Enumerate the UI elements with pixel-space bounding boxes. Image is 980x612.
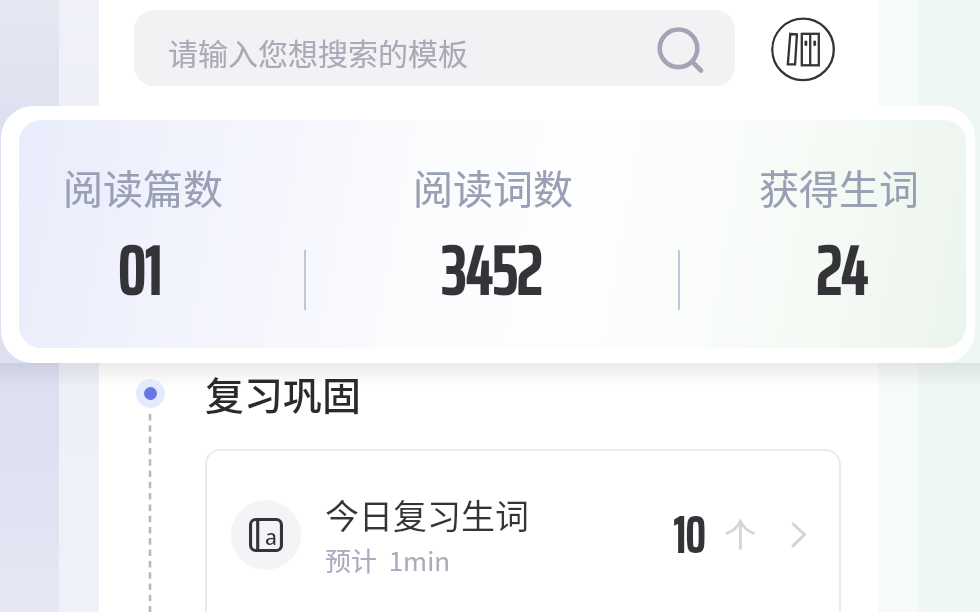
button[interactable]: a <box>205 449 841 612</box>
staticText: 今日复习生词 <box>325 490 529 539</box>
staticText: 01 <box>0 218 289 325</box>
button[interactable]: 请输入您想搜索的模板 <box>134 10 735 86</box>
staticText: 请输入您想搜索的模板 <box>168 30 468 73</box>
other: Open <box>785 515 821 551</box>
button[interactable]: 阅读词数 <box>343 158 643 216</box>
staticText: 3452 <box>341 218 641 325</box>
button[interactable]: 阅读篇数 <box>0 158 293 216</box>
button[interactable]: Library <box>771 17 837 83</box>
staticText: 24 <box>691 218 980 325</box>
staticText: 10 <box>673 497 705 574</box>
staticText: 复习巩固 <box>205 365 362 421</box>
staticText: a <box>265 523 278 552</box>
other: Increase <box>720 511 765 556</box>
staticText: 预计 1min <box>325 541 451 579</box>
button[interactable]: 获得生词 <box>689 158 980 216</box>
